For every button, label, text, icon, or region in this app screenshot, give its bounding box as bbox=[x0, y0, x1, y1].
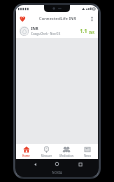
button[interactable]: Medication bbox=[56, 144, 77, 159]
button[interactable]: ConnectedLife logo bbox=[18, 14, 27, 23]
staticText: NOKIA bbox=[52, 171, 63, 175]
staticText: INR bbox=[31, 26, 39, 31]
staticText: INR bbox=[89, 31, 95, 35]
button[interactable]: Back bbox=[31, 160, 39, 168]
button[interactable]: Measure bbox=[36, 144, 56, 159]
button[interactable]: News bbox=[77, 144, 98, 159]
staticText: 1.1 bbox=[80, 28, 88, 35]
button[interactable]: Home bbox=[16, 144, 36, 159]
staticText: Measure bbox=[41, 154, 52, 158]
staticText: ConnectedLife INR bbox=[39, 16, 77, 22]
staticText: Medication bbox=[59, 154, 74, 158]
staticText: Home bbox=[22, 154, 30, 158]
button[interactable]: Recent apps bbox=[76, 160, 84, 168]
button[interactable]: Home bbox=[53, 160, 61, 168]
staticText: News bbox=[84, 154, 91, 158]
button[interactable]: INR bbox=[16, 24, 98, 38]
staticText: CoaguChek · Nov 03 bbox=[31, 32, 61, 36]
button[interactable]: More options bbox=[87, 14, 96, 23]
